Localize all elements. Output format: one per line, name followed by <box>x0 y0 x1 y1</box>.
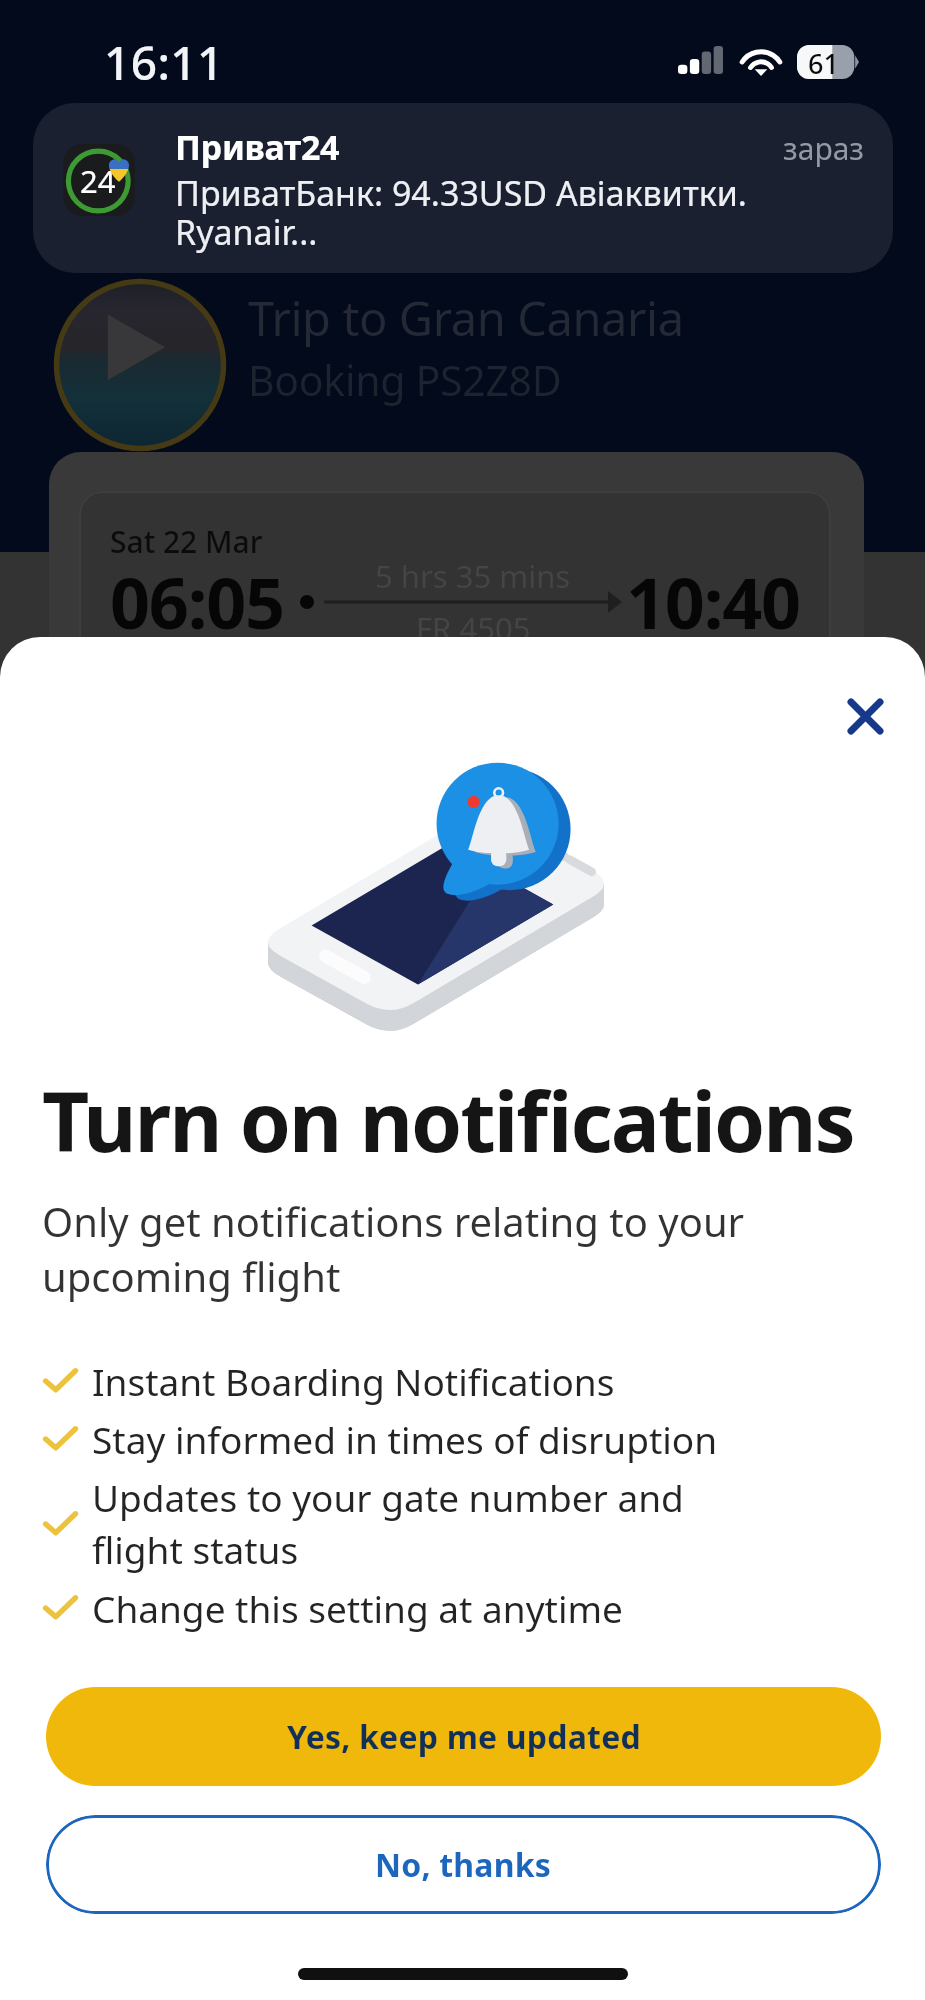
staticText: 5 hrs 35 mins <box>375 555 571 597</box>
staticText: No, thanks <box>375 1843 552 1887</box>
staticText: 06:05 <box>110 554 284 649</box>
staticText: Change this setting at anytime <box>92 1583 881 1633</box>
staticText: Trip to Gran Canaria <box>248 286 684 350</box>
staticText: Sat 22 Mar <box>110 521 263 562</box>
staticText: Приват24 <box>175 124 340 170</box>
staticText: Booking PS2Z8D <box>248 352 562 408</box>
staticText: FR 4505 <box>416 607 531 649</box>
staticText: 61 <box>808 45 839 79</box>
staticText: Instant Boarding Notifications <box>92 1356 881 1406</box>
staticText: 24 <box>80 160 116 202</box>
staticText: зараз <box>733 128 864 169</box>
staticText: Updates to your gate number and flight s… <box>92 1472 881 1575</box>
staticText: Yes, keep me updated <box>287 1715 641 1759</box>
staticText: Turn on notifications <box>42 1064 854 1176</box>
staticText: Stay informed in times of disruption <box>92 1414 881 1464</box>
button[interactable]: 24 <box>33 103 893 273</box>
staticText: 10:40 <box>626 554 800 649</box>
staticText: 16:11 <box>104 31 224 94</box>
button[interactable]: Yes, keep me updated <box>46 1687 881 1786</box>
button[interactable]: No, thanks <box>46 1815 881 1914</box>
staticText: Only get notifications relating to your … <box>42 1194 881 1304</box>
button[interactable]: Close <box>823 674 907 758</box>
staticText: ПриватБанк: 94.33USD Авіаквитки. Ryanair… <box>175 170 775 255</box>
